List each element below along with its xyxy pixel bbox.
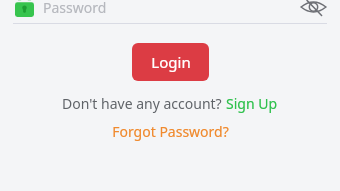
- staticText: Login: [151, 52, 191, 72]
- staticText: Forgot Password?: [112, 122, 229, 141]
- button[interactable]: Sign Up: [226, 94, 278, 113]
- button[interactable]: Forgot Password?: [112, 122, 229, 141]
- button[interactable]: Login: [132, 43, 209, 81]
- staticText: Password: [43, 0, 107, 17]
- staticText: Don't have any account?: [62, 94, 226, 113]
- other: Password: [15, 0, 34, 17]
- staticText: Sign Up: [226, 94, 278, 113]
- button[interactable]: Show password: [300, 0, 327, 17]
